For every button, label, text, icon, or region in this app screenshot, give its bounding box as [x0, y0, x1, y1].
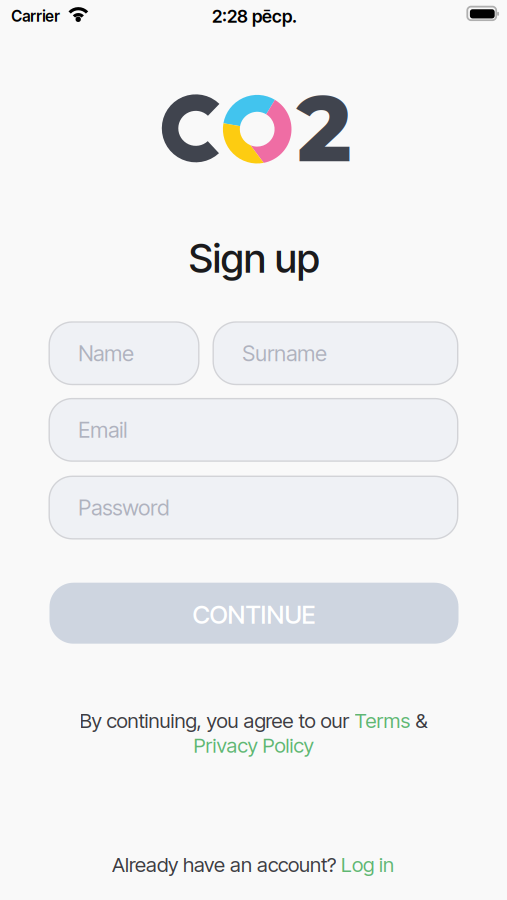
button[interactable]: Surname [213, 322, 458, 384]
staticText: Password [78, 494, 169, 521]
staticText: Log in [341, 852, 394, 877]
staticText: CONTINUE [192, 599, 315, 630]
button[interactable]: Email [49, 399, 458, 461]
staticText: By continuing, you agree to our [79, 708, 354, 733]
staticText: Already have an account? [112, 852, 341, 877]
button[interactable]: Password [49, 476, 458, 539]
staticText: Email [78, 417, 127, 443]
staticText: Name [78, 340, 134, 366]
staticText: Sign up [189, 234, 320, 282]
staticText: Terms [354, 708, 410, 733]
staticText: Carrier [11, 7, 60, 25]
staticText: 2:28 pēcp. [212, 6, 297, 27]
button[interactable]: Terms [354, 708, 410, 733]
button[interactable]: Name [49, 322, 199, 384]
button[interactable]: CONTINUE [49, 583, 458, 644]
staticText: & [410, 708, 427, 733]
staticText: Privacy Policy [193, 733, 313, 758]
button[interactable]: Privacy Policy [193, 733, 313, 758]
button[interactable]: Log in [341, 852, 394, 877]
staticText: Surname [242, 340, 327, 366]
staticText: 2 [297, 73, 352, 184]
